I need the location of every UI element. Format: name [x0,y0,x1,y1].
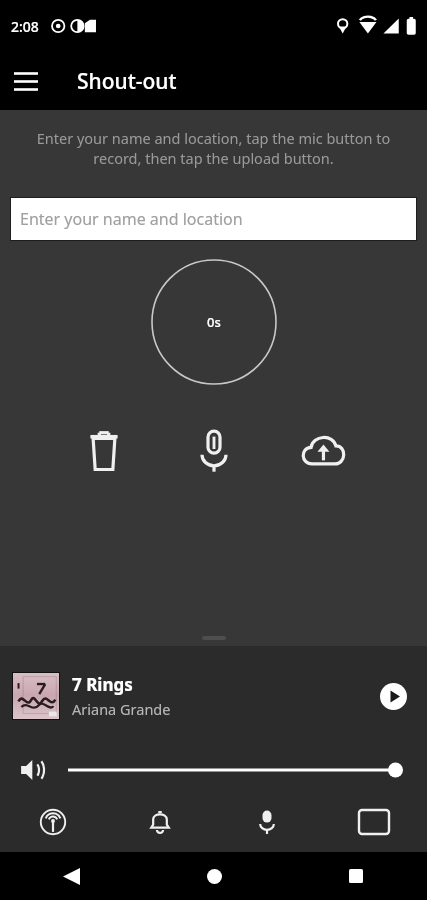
button[interactable]: Media output device [320,794,427,850]
button[interactable]: Microphone input [213,794,320,850]
button[interactable]: Notifications [106,794,213,850]
staticText: Ariana Grande [72,699,171,719]
staticText: 7 Rings [72,673,133,696]
button[interactable]: Home [143,852,285,900]
button[interactable]: Play [371,674,415,718]
button[interactable]: Open navigation menu [4,59,48,103]
staticText: Shout-out [77,67,177,96]
button[interactable]: Record with microphone [184,421,244,481]
staticText: Enter your name and location, tap the mi… [24,128,403,169]
button[interactable]: Enter your name and location [10,197,417,241]
button[interactable]: Upload recording [293,421,353,481]
button[interactable]: Recording timer [151,259,277,385]
staticText: Enter your name and location [20,208,243,230]
button[interactable]: Delete recording [74,421,134,481]
button[interactable]: Back [0,852,143,900]
staticText: 2:08 [11,17,39,36]
button[interactable]: Recent apps [285,852,427,900]
button[interactable]: Volume [14,750,54,790]
staticText: 0s [207,313,221,331]
button[interactable]: Volume slider [68,756,403,784]
button[interactable]: 7 Rings [0,646,427,746]
button[interactable]: Cast output [0,794,106,850]
